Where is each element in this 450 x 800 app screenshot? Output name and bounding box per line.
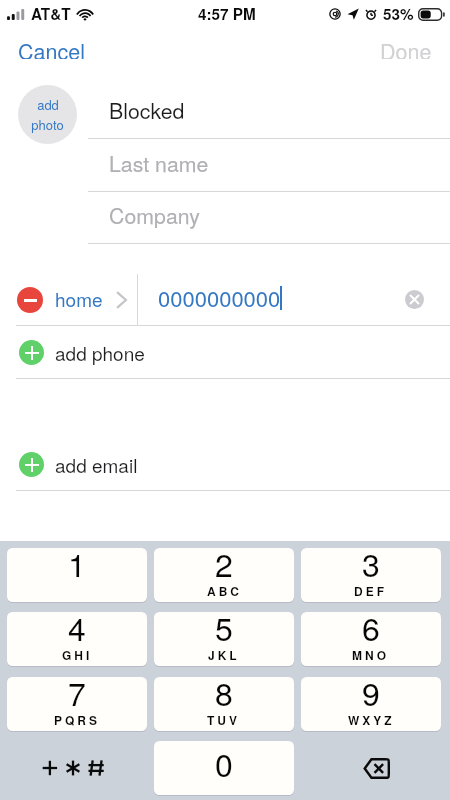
button[interactable]: 1 [7, 548, 147, 602]
staticText: Blocked [109, 95, 185, 126]
button[interactable]: 7 [7, 677, 147, 731]
staticText: ABC [207, 582, 242, 599]
staticText: photo [31, 115, 64, 134]
button[interactable]: 6 [301, 612, 441, 666]
staticText: DEF [354, 582, 388, 599]
staticText: Done [380, 35, 432, 59]
staticText: 1 [68, 548, 86, 586]
button[interactable]: 9 [301, 677, 441, 731]
button[interactable]: home [55, 286, 103, 313]
button[interactable]: Symbols [7, 741, 147, 795]
staticText: 3 [362, 548, 380, 586]
staticText: Company [109, 200, 200, 231]
staticText: 0 [215, 741, 233, 786]
staticText: PQRS [54, 711, 101, 728]
staticText: 2 [215, 548, 233, 586]
staticText: GHI [62, 646, 93, 663]
button[interactable]: Backspace [301, 741, 441, 795]
staticText: 53% [383, 3, 414, 25]
button[interactable]: Add photo [18, 85, 77, 144]
button[interactable]: Last name [0, 137, 450, 189]
staticText: add phone [55, 339, 145, 366]
button[interactable]: Company [0, 189, 450, 241]
staticText: MNO [352, 646, 390, 663]
staticText: add email [55, 451, 138, 478]
staticText: 4 [68, 612, 86, 650]
staticText: 4:57 PM [198, 3, 256, 25]
button[interactable]: Blocked [0, 84, 450, 136]
button[interactable]: Remove phone [17, 287, 43, 313]
staticText: 5 [215, 612, 233, 650]
button[interactable]: add email [0, 438, 450, 490]
staticText: TUV [207, 711, 241, 728]
button[interactable]: 2 [154, 548, 294, 602]
button[interactable]: Cancel [0, 27, 103, 67]
button[interactable]: Done [362, 27, 450, 67]
button[interactable]: 0 [154, 741, 294, 795]
staticText: home [55, 285, 103, 312]
staticText: JKL [208, 646, 240, 663]
staticText: 6 [362, 612, 380, 650]
staticText: 7 [68, 677, 86, 715]
staticText: 0000000000 [158, 282, 281, 314]
button[interactable]: 3 [301, 548, 441, 602]
button[interactable]: 8 [154, 677, 294, 731]
staticText: Cancel [18, 35, 85, 59]
button[interactable]: Clear text [405, 290, 424, 309]
staticText: Last name [109, 148, 209, 179]
staticText: AT&T [31, 3, 71, 25]
button[interactable]: 5 [154, 612, 294, 666]
button[interactable]: 4 [7, 612, 147, 666]
staticText: 8 [215, 677, 233, 715]
other: Change label [116, 291, 127, 309]
button[interactable]: add phone [0, 326, 450, 378]
staticText: add [37, 95, 59, 114]
staticText: 9 [362, 677, 380, 715]
staticText: WXYZ [348, 711, 395, 728]
